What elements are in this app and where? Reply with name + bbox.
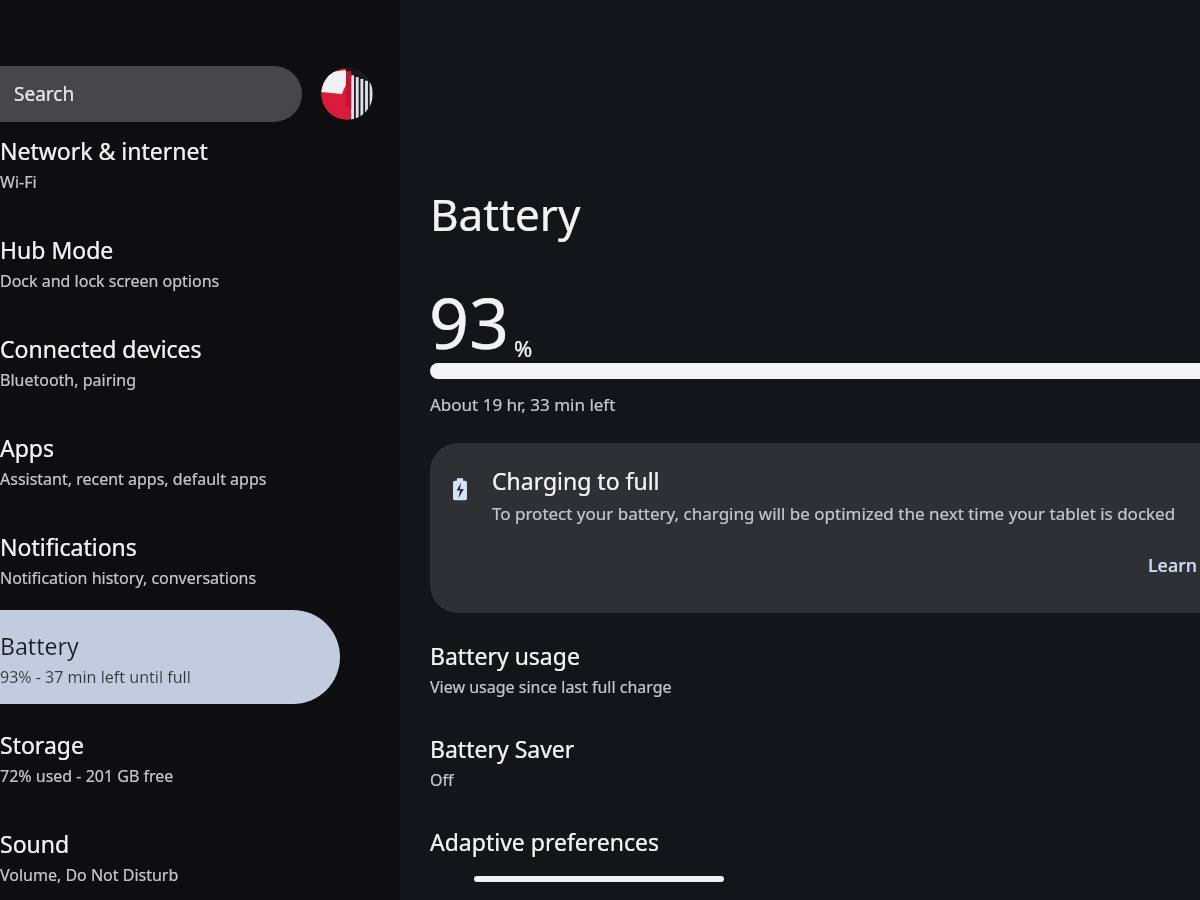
staticText: Bluetooth, pairing bbox=[0, 369, 137, 391]
staticText: Notification history, conversations bbox=[0, 567, 257, 589]
staticText: Search bbox=[14, 81, 75, 107]
button[interactable]: Apps bbox=[0, 412, 340, 506]
button[interactable]: Battery bbox=[0, 610, 340, 704]
staticText: Battery bbox=[0, 630, 79, 661]
button[interactable]: Sound bbox=[0, 808, 340, 900]
staticText: Adaptive preferences bbox=[430, 826, 660, 857]
staticText: Dock and lock screen options bbox=[0, 270, 220, 292]
staticText: Battery usage bbox=[430, 640, 580, 671]
staticText: Off bbox=[430, 769, 454, 791]
button[interactable]: Storage bbox=[0, 709, 340, 803]
staticText: 93 bbox=[429, 274, 510, 369]
button[interactable]: Battery usage bbox=[400, 618, 1200, 704]
staticText: Storage bbox=[0, 729, 84, 760]
staticText: View usage since last full charge bbox=[430, 676, 672, 698]
staticText: To protect your battery, charging will b… bbox=[492, 502, 1176, 525]
button[interactable]: Battery Saver bbox=[400, 711, 1200, 797]
button[interactable]: Notifications bbox=[0, 511, 340, 605]
button[interactable]: Network & internet bbox=[0, 115, 340, 209]
staticText: 93% - 37 min left until full bbox=[0, 666, 191, 688]
button[interactable]: Account bbox=[321, 68, 373, 120]
button[interactable]: Connected devices bbox=[0, 313, 340, 407]
staticText: Sound bbox=[0, 828, 70, 859]
staticText: Hub Mode bbox=[0, 234, 114, 265]
button[interactable]: Learn more bbox=[1148, 553, 1200, 578]
staticText: Notifications bbox=[0, 531, 137, 562]
staticText: Wi-Fi bbox=[0, 171, 37, 193]
button[interactable]: Charging to full bbox=[430, 443, 1200, 613]
staticText: Battery bbox=[430, 184, 581, 244]
staticText: Battery Saver bbox=[430, 733, 575, 764]
staticText: About 19 hr, 33 min left bbox=[430, 393, 616, 416]
staticText: Volume, Do Not Disturb bbox=[0, 864, 179, 886]
staticText: Charging to full bbox=[492, 465, 660, 496]
staticText: Assistant, recent apps, default apps bbox=[0, 468, 267, 490]
staticText: Apps bbox=[0, 432, 55, 463]
staticText: 72% used - 201 GB free bbox=[0, 765, 174, 787]
button[interactable]: Adaptive preferences bbox=[400, 804, 1200, 864]
button[interactable]: Search bbox=[0, 66, 302, 122]
staticText: Network & internet bbox=[0, 135, 208, 166]
staticText: Connected devices bbox=[0, 333, 202, 364]
staticText: % bbox=[514, 333, 533, 363]
button[interactable]: Hub Mode bbox=[0, 214, 340, 308]
staticText: Learn more bbox=[1148, 553, 1200, 578]
